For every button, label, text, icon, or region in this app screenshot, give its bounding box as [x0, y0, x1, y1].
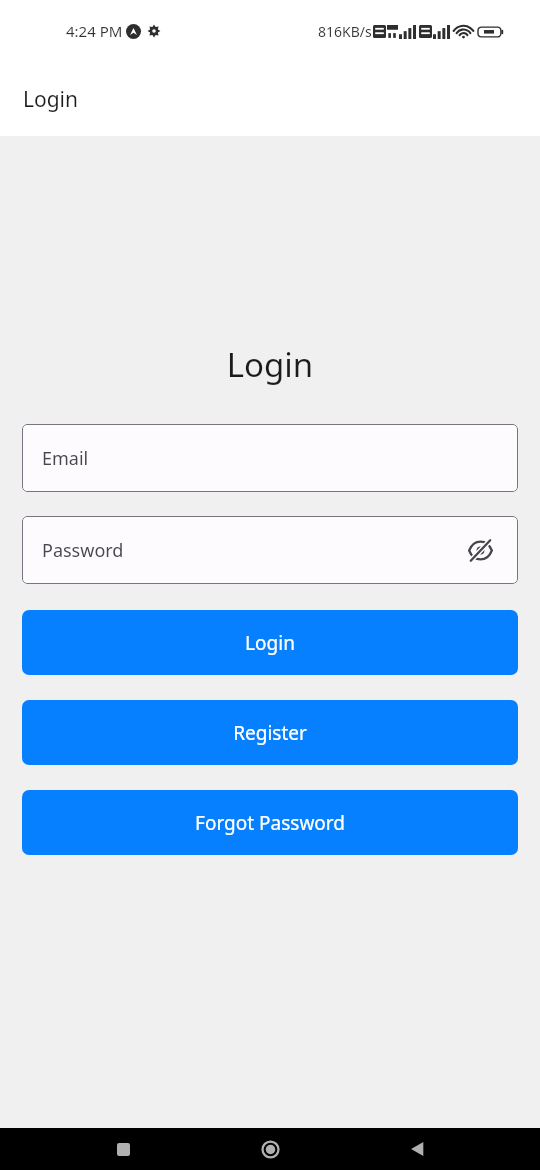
staticText: Forgot Password [195, 810, 345, 836]
button[interactable]: Login [22, 610, 518, 675]
button[interactable]: Back [393, 1128, 441, 1170]
staticText: 4:24 PM [66, 21, 123, 41]
button[interactable]: Show password [462, 532, 498, 568]
button[interactable]: Recent apps [99, 1128, 147, 1170]
staticText: Password [42, 538, 462, 563]
button[interactable]: Home [246, 1128, 294, 1170]
staticText: Login [22, 342, 518, 387]
staticText: Register [233, 720, 307, 746]
staticText: Login [245, 630, 295, 656]
button[interactable]: Forgot Password [22, 790, 518, 855]
staticText: 816KB/s [318, 22, 372, 41]
staticText: Login [23, 85, 79, 114]
button[interactable]: Register [22, 700, 518, 765]
staticText: Email [42, 446, 498, 471]
button[interactable]: Password [22, 516, 518, 584]
button[interactable]: Email [22, 424, 518, 492]
